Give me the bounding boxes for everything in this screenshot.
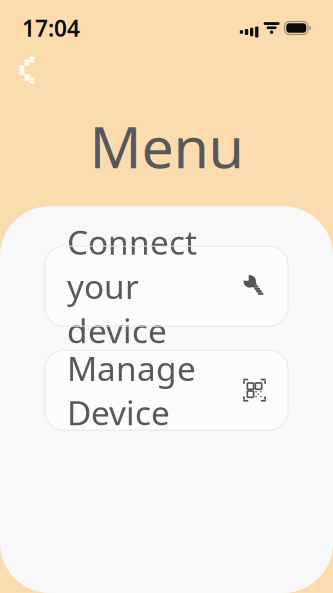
button[interactable]: Connect your device xyxy=(45,246,288,326)
staticText: Menu xyxy=(89,108,243,184)
button[interactable]: Manage Device xyxy=(45,350,288,430)
staticText: Manage Device xyxy=(67,346,196,434)
staticText: Connect your device xyxy=(67,220,197,352)
button[interactable]: Back xyxy=(5,48,49,92)
staticText: 17:04 xyxy=(22,13,80,43)
